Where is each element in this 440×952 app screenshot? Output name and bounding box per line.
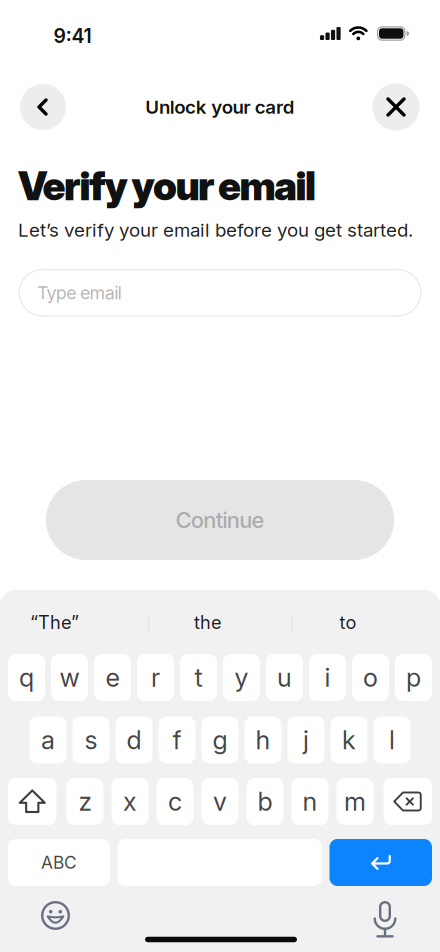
button[interactable]: w [51, 654, 88, 701]
button[interactable]: z [66, 778, 103, 825]
button[interactable]: the [138, 602, 278, 642]
button[interactable]: r [137, 654, 174, 701]
button[interactable] [365, 894, 405, 940]
staticText: v [213, 786, 227, 817]
button[interactable]: l [373, 716, 410, 763]
staticText: u [277, 662, 292, 693]
staticText: “The” [30, 611, 79, 633]
staticText: n [302, 786, 317, 817]
staticText: w [59, 662, 79, 693]
staticText: s [84, 725, 97, 755]
staticText: Let’s verify your email before you get s… [18, 219, 413, 241]
button[interactable] [372, 83, 419, 130]
button[interactable]: k [330, 716, 367, 763]
button[interactable]: o [352, 654, 389, 701]
staticText: y [234, 662, 248, 693]
staticText: h [255, 725, 270, 755]
staticText: g [212, 725, 227, 755]
button[interactable]: b [246, 778, 283, 825]
staticText: z [78, 786, 91, 817]
button[interactable]: a [29, 716, 66, 763]
staticText: d [126, 725, 141, 755]
button[interactable] [383, 778, 432, 825]
staticText: to [339, 611, 356, 633]
button[interactable]: q [8, 654, 45, 701]
staticText: r [151, 662, 160, 693]
button[interactable]: i [309, 654, 346, 701]
button[interactable]: s [72, 716, 109, 763]
button[interactable]: p [395, 654, 432, 701]
staticText: m [344, 786, 366, 817]
button[interactable]: “The” [0, 602, 124, 642]
button[interactable]: h [244, 716, 281, 763]
button[interactable]: y [223, 654, 260, 701]
button[interactable]: d [115, 716, 152, 763]
staticText: a [41, 725, 55, 755]
staticText: Verify your email [18, 162, 316, 210]
staticText: i [324, 662, 330, 693]
staticText: b [257, 786, 272, 817]
button[interactable] [8, 778, 56, 825]
staticText: j [303, 725, 309, 755]
staticText: x [123, 786, 137, 817]
button[interactable]: e [94, 654, 131, 701]
staticText: the [194, 611, 222, 633]
staticText: Continue [175, 507, 265, 533]
button[interactable]: x [111, 778, 148, 825]
staticText: p [406, 662, 421, 693]
button[interactable] [329, 839, 432, 886]
staticText: q [19, 662, 34, 693]
button[interactable]: m [336, 778, 373, 825]
button[interactable]: Type email [18, 269, 421, 317]
button[interactable]: f [158, 716, 195, 763]
staticText: o [363, 662, 378, 693]
staticText: l [389, 725, 395, 755]
button[interactable]: c [156, 778, 193, 825]
button[interactable]: j [287, 716, 324, 763]
button[interactable]: v [201, 778, 238, 825]
staticText: k [342, 725, 356, 755]
staticText: e [105, 662, 119, 693]
staticText: f [172, 725, 181, 755]
staticText: t [194, 662, 202, 693]
staticText: Type email [37, 282, 122, 304]
button[interactable]: t [180, 654, 217, 701]
button[interactable]: ABC [8, 839, 110, 886]
button[interactable]: g [201, 716, 238, 763]
staticText: 9:41 [53, 24, 91, 48]
button[interactable]: to [278, 602, 418, 642]
staticText: c [168, 786, 182, 817]
button[interactable]: u [266, 654, 303, 701]
button[interactable] [20, 84, 66, 130]
button[interactable] [35, 895, 75, 935]
staticText: Unlock your card [145, 96, 295, 118]
button[interactable]: Continue [46, 480, 394, 560]
button[interactable]: n [291, 778, 328, 825]
staticText: ABC [41, 852, 77, 873]
